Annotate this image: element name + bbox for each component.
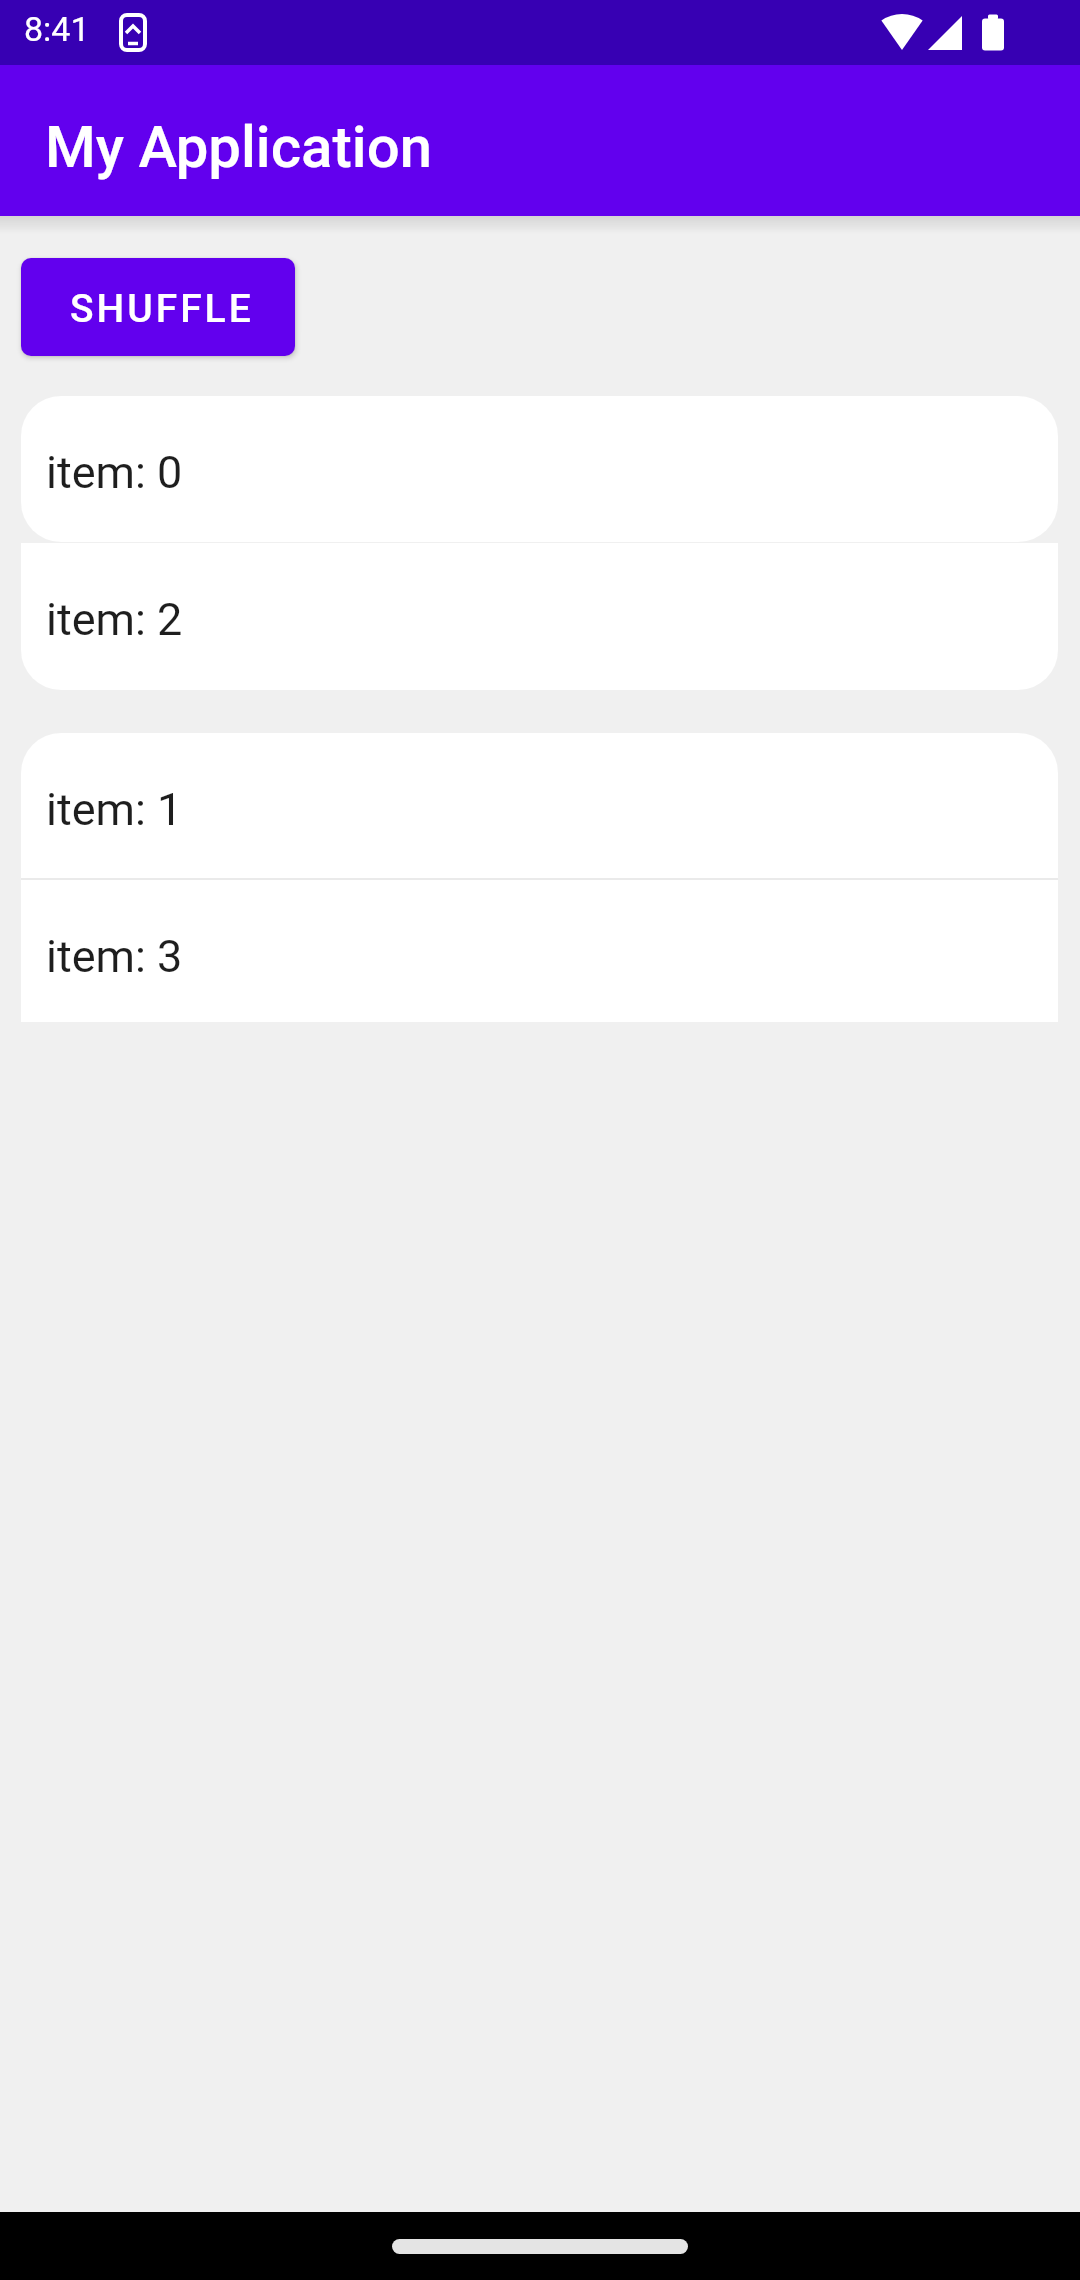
button[interactable]: item: 0 — [21, 396, 1058, 542]
staticText: My Application — [45, 113, 432, 181]
button[interactable]: SHUFFLE — [21, 258, 295, 356]
staticText: item: 1 — [46, 783, 183, 836]
button[interactable]: item: 3 — [21, 880, 1058, 1022]
button[interactable]: item: 1 — [21, 733, 1058, 878]
staticText: item: 2 — [46, 593, 183, 646]
staticText: 8:41 — [24, 9, 90, 49]
button[interactable]: item: 2 — [21, 543, 1058, 690]
staticText: item: 3 — [46, 930, 183, 983]
staticText: item: 0 — [46, 446, 183, 499]
staticText: SHUFFLE — [70, 286, 254, 332]
